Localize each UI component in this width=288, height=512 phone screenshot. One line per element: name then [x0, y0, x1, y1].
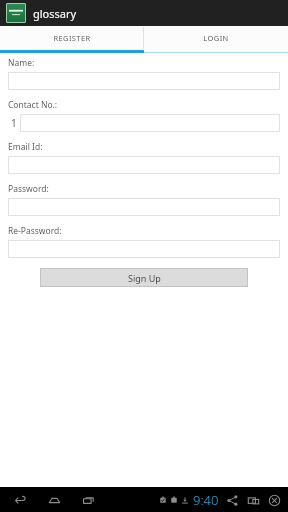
button[interactable]: Sign Up — [40, 268, 248, 287]
other: App icon — [6, 3, 26, 23]
staticText: glossary — [33, 6, 77, 21]
staticText: Email Id: — [8, 141, 43, 153]
staticText: REGISTER — [53, 33, 91, 43]
staticText: Contact No.: — [8, 99, 58, 111]
staticText: 1 — [11, 116, 17, 130]
button[interactable] — [8, 156, 280, 174]
button[interactable]: Recent apps — [80, 492, 96, 508]
button[interactable]: Back — [12, 492, 28, 508]
button[interactable]: Share — [224, 492, 240, 508]
button[interactable] — [8, 72, 280, 90]
button[interactable]: LOGIN — [144, 26, 288, 50]
button[interactable] — [8, 240, 280, 258]
staticText: Re-Password: — [8, 225, 62, 237]
staticText: Name: — [8, 57, 35, 69]
staticText: Password: — [8, 183, 49, 195]
button[interactable] — [20, 114, 280, 132]
button[interactable] — [8, 198, 280, 216]
button[interactable]: Close — [266, 492, 282, 508]
staticText: 9:40 — [193, 491, 219, 509]
staticText: LOGIN — [203, 33, 229, 43]
button[interactable]: Screenshot — [245, 492, 261, 508]
staticText: Sign Up — [128, 272, 161, 284]
button[interactable]: Home — [46, 492, 62, 508]
button[interactable]: REGISTER — [0, 26, 144, 50]
